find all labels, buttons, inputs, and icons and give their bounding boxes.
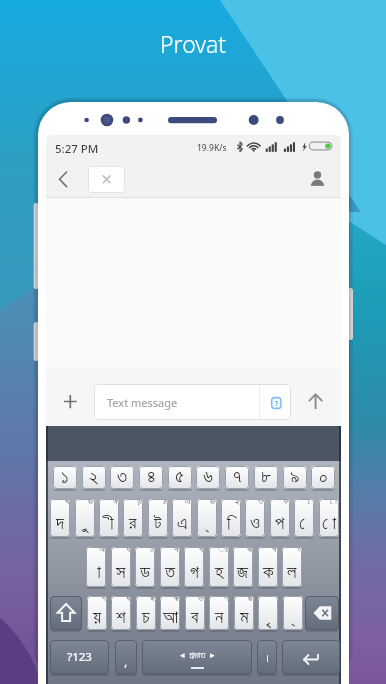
staticText: া	[92, 563, 101, 582]
button[interactable]: ৪	[139, 466, 163, 489]
button[interactable]: ব	[185, 596, 205, 630]
staticText: গ	[190, 563, 199, 582]
button[interactable]	[50, 596, 82, 630]
staticText: ফ	[283, 499, 289, 506]
staticText: ৃ	[265, 608, 271, 627]
staticText: ৯	[290, 468, 300, 487]
button[interactable]: ল	[282, 547, 302, 587]
staticText: ঐ	[185, 499, 191, 506]
button[interactable]: চ	[136, 596, 156, 630]
button[interactable]: ৯	[283, 466, 307, 489]
staticText: ।	[265, 650, 270, 665]
button[interactable]: ?123	[50, 640, 109, 674]
button[interactable]: ্	[283, 596, 303, 630]
staticText: ৈ	[308, 499, 313, 506]
staticText: দ	[56, 514, 64, 533]
button[interactable]: ০	[311, 466, 335, 489]
staticText: ৭	[233, 468, 242, 487]
staticText: ্	[204, 514, 210, 533]
button[interactable]: ও	[245, 499, 265, 537]
staticText: ত	[165, 563, 176, 582]
staticText: 19.9K/s	[197, 142, 227, 154]
button[interactable]: ী	[99, 499, 119, 537]
staticText: চ	[142, 608, 150, 627]
button[interactable]: ৬	[196, 466, 220, 489]
staticText: ঋ	[173, 596, 179, 603]
staticText: ঙ	[248, 596, 253, 603]
button[interactable]: ৃ	[258, 596, 278, 630]
button[interactable]: ত	[160, 547, 180, 587]
button[interactable]: ট	[148, 499, 168, 537]
staticText: ,	[124, 652, 128, 670]
staticText: য়	[93, 608, 101, 627]
button[interactable]: Text message	[94, 384, 291, 420]
staticText: হ	[215, 563, 224, 582]
button[interactable]: ,	[115, 640, 137, 674]
button[interactable]: ◂ প্রভাত ▸	[142, 640, 252, 674]
staticText: ঊ	[88, 499, 94, 506]
button[interactable]: Provat	[0, 28, 386, 58]
staticText: থ	[174, 547, 179, 554]
button[interactable]: ্	[197, 499, 217, 537]
staticText: ু	[82, 514, 88, 533]
button[interactable]: দ	[50, 499, 70, 537]
button[interactable]: ক	[258, 547, 278, 587]
staticText: ?	[275, 399, 279, 408]
staticText: ০	[319, 468, 328, 487]
button[interactable]: ে	[294, 499, 314, 537]
staticText: ৪	[147, 468, 156, 487]
button[interactable]	[54, 166, 70, 188]
staticText: Text message	[107, 395, 178, 410]
button[interactable]: ু	[75, 499, 95, 537]
staticText: স	[116, 563, 126, 582]
button[interactable]: া	[86, 547, 106, 587]
staticText: অ	[99, 547, 105, 554]
button[interactable]: জ	[233, 547, 253, 587]
staticText: ে	[299, 514, 310, 533]
staticText: ষ	[126, 596, 130, 603]
staticText: ো	[322, 514, 337, 533]
button[interactable]: ি	[221, 499, 241, 537]
button[interactable]: ৩	[110, 466, 134, 489]
staticText: ঈ	[113, 499, 118, 506]
staticText: র	[129, 514, 137, 533]
staticText: ক	[263, 563, 274, 582]
button[interactable]: স	[111, 547, 131, 587]
button[interactable]: ৫	[168, 466, 192, 489]
staticText: ৌ	[330, 499, 338, 506]
button[interactable]	[282, 640, 340, 674]
button[interactable]: ।	[257, 640, 277, 674]
staticText: Provat	[160, 28, 227, 58]
button[interactable]: আ	[160, 596, 180, 630]
button[interactable]: য়	[87, 596, 107, 630]
button[interactable]: ৮	[254, 466, 278, 489]
button[interactable]: এ	[172, 499, 192, 537]
button[interactable]: ম	[234, 596, 254, 630]
staticText: ও	[250, 514, 260, 533]
staticText: ড়	[137, 499, 142, 506]
staticText: ঃ	[218, 547, 228, 554]
staticText: ড	[140, 563, 150, 582]
staticText: ১	[61, 468, 69, 487]
button[interactable]: ো	[319, 499, 339, 537]
staticText: ঘ	[199, 547, 203, 554]
button[interactable]	[46, 426, 341, 462]
button[interactable]: হ	[209, 547, 229, 587]
button[interactable]	[58, 391, 79, 412]
button[interactable]: ৭	[225, 466, 249, 489]
staticText: ঢ	[150, 547, 154, 554]
button[interactable]: গ	[184, 547, 204, 587]
button[interactable]	[88, 166, 125, 193]
button[interactable]: ড	[135, 547, 155, 587]
button[interactable]: ১	[53, 466, 77, 489]
button[interactable]	[305, 596, 339, 630]
button[interactable]: শ	[111, 596, 131, 630]
staticText: ঊ	[210, 499, 216, 506]
staticText: ম	[240, 608, 249, 627]
staticText: খ	[272, 547, 277, 554]
button[interactable]: ২	[82, 466, 106, 489]
button[interactable]: ন	[209, 596, 229, 630]
button[interactable]: প	[270, 499, 290, 537]
button[interactable]: র	[123, 499, 143, 537]
staticText: ণ	[224, 596, 228, 603]
